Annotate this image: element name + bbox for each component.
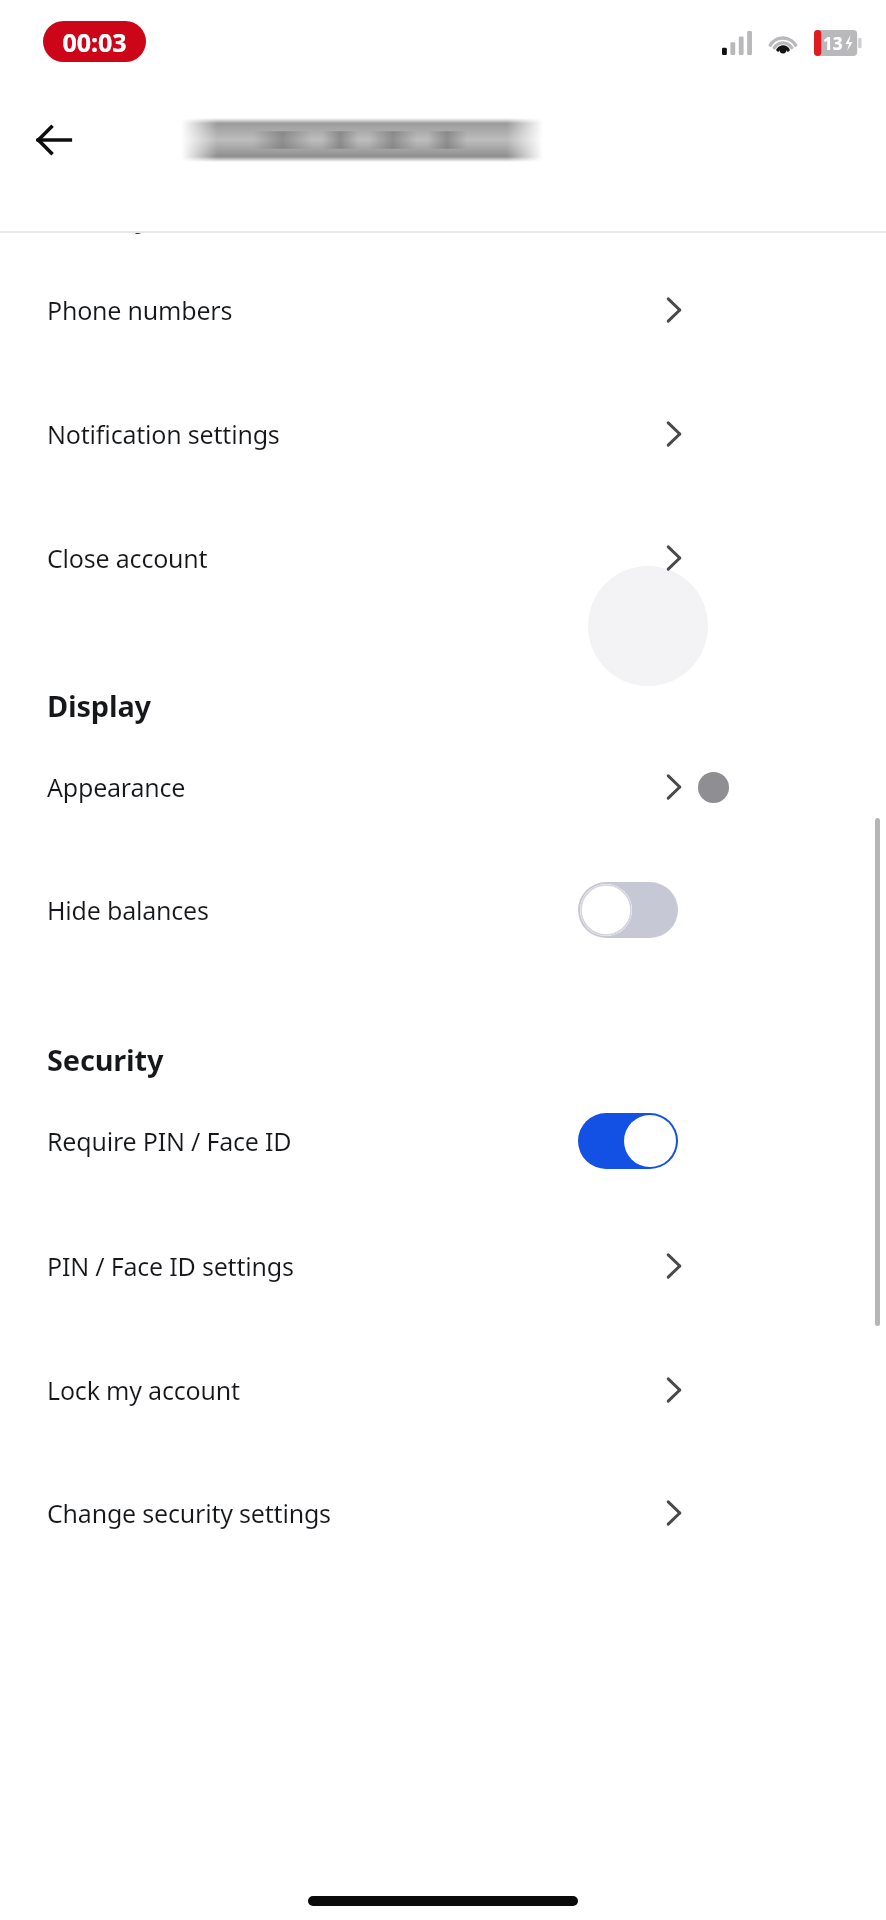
- staticText: Display: [47, 686, 151, 725]
- staticText: Hide balances: [47, 893, 209, 927]
- button[interactable]: [578, 882, 678, 938]
- button[interactable]: Privacy: [47, 196, 151, 235]
- button[interactable]: Hide balances: [0, 868, 886, 952]
- button[interactable]: Notification settings: [0, 408, 886, 460]
- button[interactable]: Close account: [0, 532, 886, 584]
- button[interactable]: Lock my account: [0, 1364, 886, 1416]
- staticText: Change security settings: [47, 1496, 331, 1530]
- staticText: Phone numbers: [47, 293, 233, 327]
- staticText: Privacy: [47, 196, 151, 235]
- staticText: PIN / Face ID settings: [47, 1249, 294, 1283]
- staticText: Notification settings: [47, 417, 280, 451]
- button[interactable]: Back: [18, 104, 90, 176]
- button[interactable]: Change security settings: [0, 1487, 886, 1539]
- staticText: Appearance: [47, 770, 186, 804]
- button[interactable]: Appearance: [0, 745, 886, 829]
- button[interactable]: [578, 1113, 678, 1169]
- staticText: Close account: [47, 541, 208, 575]
- staticText: Lock my account: [47, 1373, 240, 1407]
- staticText: Security: [47, 1040, 164, 1079]
- staticText: 13: [823, 32, 843, 55]
- staticText: Require PIN / Face ID: [47, 1124, 292, 1158]
- button[interactable]: PIN / Face ID settings: [0, 1240, 886, 1292]
- staticText: 00:03: [62, 25, 127, 59]
- button[interactable]: Require PIN / Face ID: [0, 1099, 886, 1183]
- button[interactable]: Phone numbers: [0, 284, 886, 336]
